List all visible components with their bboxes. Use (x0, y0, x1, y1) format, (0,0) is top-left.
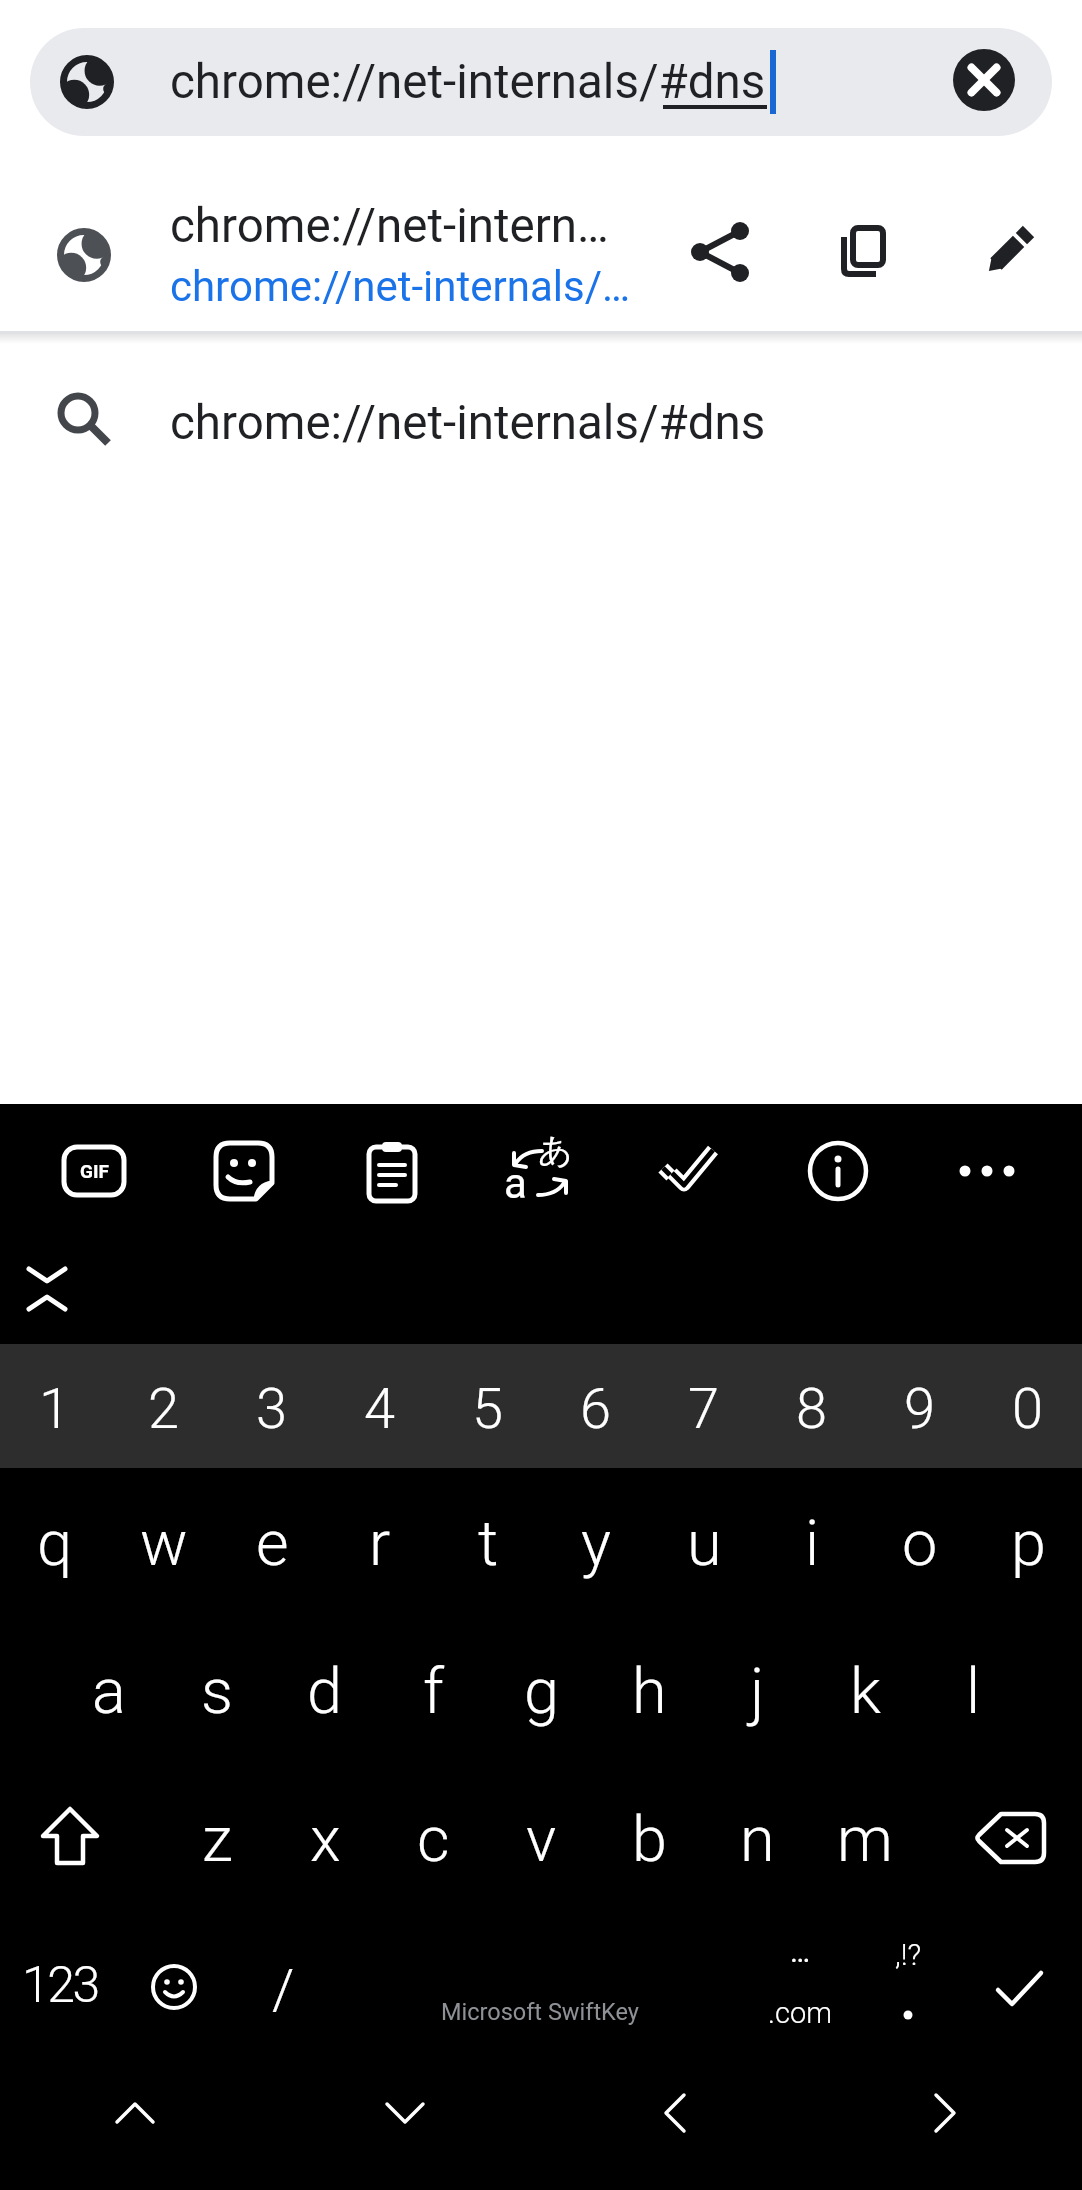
staticText: a (504, 1159, 527, 1208)
staticText: i (805, 1507, 820, 1581)
button[interactable]: w (109, 1468, 218, 1620)
button[interactable]: b (595, 1764, 703, 1916)
button[interactable]: f (379, 1616, 487, 1768)
button[interactable]: a (55, 1616, 163, 1768)
staticText: r (369, 1507, 391, 1581)
staticText: chrome://net-internals/#dns (170, 395, 766, 451)
button[interactable]: d (271, 1616, 379, 1768)
button[interactable] (605, 2063, 745, 2163)
button[interactable]: … (745, 1926, 855, 1976)
staticText: h (632, 1655, 667, 1729)
button[interactable] (951, 1773, 1071, 1903)
button[interactable] (793, 1126, 883, 1216)
staticText: s (201, 1655, 233, 1729)
button[interactable] (124, 1927, 224, 2047)
button[interactable]: l (919, 1616, 1027, 1768)
staticText: z (202, 1803, 233, 1877)
button[interactable]: 8 (758, 1344, 866, 1468)
staticText: y (581, 1507, 611, 1581)
staticText: .com (768, 1996, 832, 2030)
button[interactable]: z (163, 1764, 271, 1916)
staticText: p (1011, 1507, 1046, 1581)
button[interactable]: ,!? (858, 1929, 958, 1979)
button[interactable]: a (495, 1126, 585, 1216)
button[interactable] (643, 1126, 733, 1216)
button[interactable]: 123 (5, 1925, 115, 2045)
staticText: n (740, 1803, 775, 1877)
button[interactable]: n (703, 1764, 811, 1916)
button[interactable]: 5 (434, 1344, 542, 1468)
staticText: ,!? (895, 1937, 922, 1972)
button[interactable]: u (650, 1468, 758, 1620)
button[interactable]: chrome://net-intern… (0, 180, 1082, 330)
staticText: chrome://net-internals/… (170, 262, 631, 311)
staticText: f (423, 1655, 444, 1729)
staticText: k (850, 1655, 881, 1729)
button[interactable]: m (811, 1764, 919, 1916)
button[interactable] (942, 1126, 1032, 1216)
staticText: 3 (256, 1376, 288, 1442)
button[interactable]: / (233, 1930, 333, 2050)
staticText: 5 (472, 1376, 504, 1442)
button[interactable]: 6 (542, 1344, 650, 1468)
staticText: e (256, 1507, 289, 1581)
staticText: 9 (904, 1376, 936, 1442)
button[interactable]: 4 (326, 1344, 434, 1468)
staticText: m (837, 1803, 893, 1877)
button[interactable]: s (163, 1616, 271, 1768)
staticText: l (966, 1655, 981, 1729)
button[interactable] (858, 1980, 958, 2040)
button[interactable] (965, 1928, 1075, 2048)
button[interactable] (15, 1773, 125, 1903)
staticText: … (790, 1934, 811, 1969)
button[interactable] (335, 2063, 475, 2163)
button[interactable]: p (974, 1468, 1082, 1620)
staticText: GIF (80, 1160, 109, 1182)
button[interactable]: c (379, 1764, 487, 1916)
button[interactable]: 2 (109, 1344, 218, 1468)
button[interactable] (199, 1126, 289, 1216)
button[interactable]: e (218, 1468, 326, 1620)
button[interactable]: o (866, 1468, 974, 1620)
staticText: 8 (796, 1376, 828, 1442)
button[interactable]: r (326, 1468, 434, 1620)
button[interactable]: q (0, 1468, 109, 1620)
button[interactable]: y (542, 1468, 650, 1620)
button[interactable] (683, 214, 759, 290)
button[interactable]: t (434, 1468, 542, 1620)
button[interactable]: chrome://net-internals/#dns (30, 28, 1052, 136)
button[interactable] (824, 214, 900, 290)
staticText: chrome://net-internals/#dns (170, 54, 766, 110)
button[interactable]: 0 (974, 1344, 1082, 1468)
button[interactable]: chrome://net-internals/#dns (0, 360, 1082, 485)
staticText: t (478, 1507, 499, 1581)
button[interactable]: v (487, 1764, 595, 1916)
button[interactable] (875, 2063, 1015, 2163)
staticText: あ (538, 1129, 573, 1172)
button[interactable]: 1 (0, 1344, 109, 1468)
staticText: g (524, 1655, 559, 1729)
staticText: / (272, 1957, 295, 2023)
button[interactable]: 7 (650, 1344, 758, 1468)
staticText: w (140, 1507, 188, 1581)
staticText: Microsoft SwiftKey (441, 1998, 639, 2026)
button[interactable]: 3 (218, 1344, 326, 1468)
button[interactable]: 9 (866, 1344, 974, 1468)
staticText: c (417, 1803, 450, 1877)
staticText: v (526, 1803, 557, 1877)
button[interactable]: k (811, 1616, 919, 1768)
button[interactable]: .com (745, 1983, 855, 2043)
button[interactable]: j (703, 1616, 811, 1768)
button[interactable]: GIF (49, 1126, 139, 1216)
button[interactable] (7, 1249, 87, 1329)
button[interactable]: g (487, 1616, 595, 1768)
staticText: 2 (148, 1376, 180, 1442)
staticText: x (310, 1803, 341, 1877)
button[interactable] (347, 1126, 437, 1216)
button[interactable]: i (758, 1468, 866, 1620)
button[interactable]: x (271, 1764, 379, 1916)
button[interactable] (970, 214, 1046, 290)
button[interactable] (953, 49, 1015, 111)
button[interactable]: h (595, 1616, 703, 1768)
button[interactable] (65, 2063, 205, 2163)
